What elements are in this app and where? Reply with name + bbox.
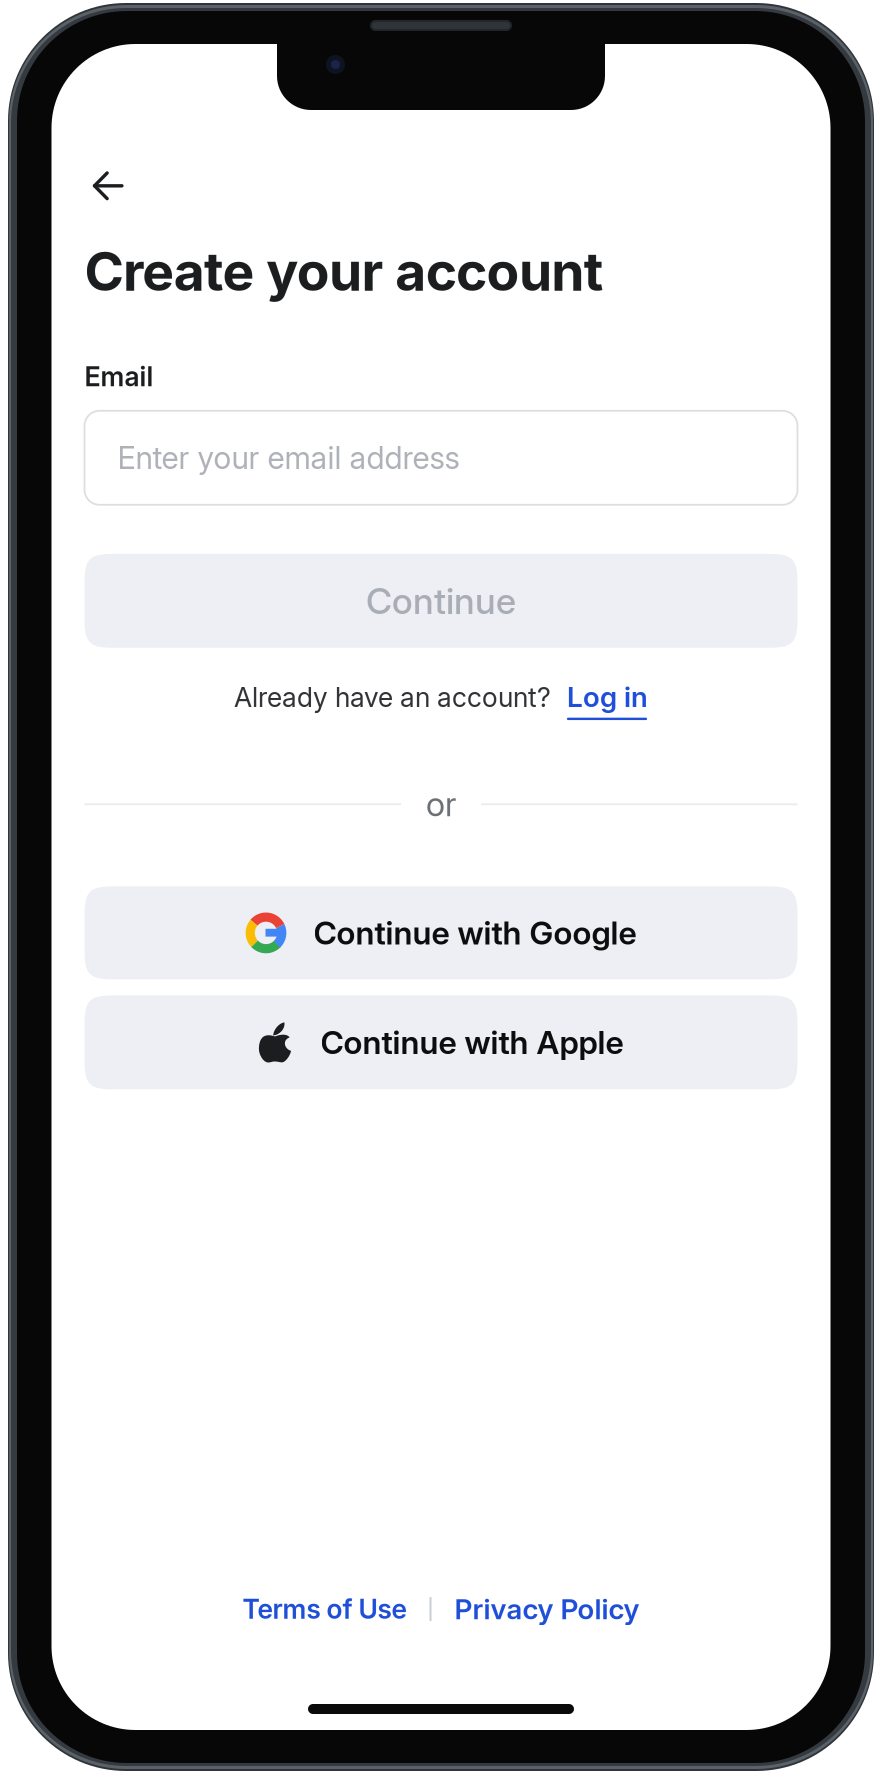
staticText: Continue with Google: [313, 913, 636, 952]
staticText: Already have an account?: [234, 681, 551, 713]
staticText: Continue with Apple: [320, 1023, 623, 1062]
staticText: Enter your email address: [117, 439, 459, 476]
button[interactable]: Continue with Google: [84, 886, 797, 979]
button[interactable]: Privacy Policy: [454, 1592, 639, 1626]
staticText: Log in: [567, 680, 648, 714]
staticText: or: [426, 784, 456, 824]
button[interactable]: Continue: [84, 554, 797, 648]
staticText: Terms of Use: [242, 1593, 406, 1625]
button[interactable]: Terms of Use: [242, 1593, 406, 1625]
button[interactable]: Continue with Apple: [84, 995, 797, 1089]
button[interactable]: Back: [84, 155, 154, 217]
staticText: Privacy Policy: [454, 1592, 639, 1626]
staticText: Continue: [366, 579, 516, 623]
button[interactable]: Log in: [567, 680, 648, 720]
staticText: Email: [84, 360, 153, 393]
staticText: Create your account: [84, 239, 604, 303]
